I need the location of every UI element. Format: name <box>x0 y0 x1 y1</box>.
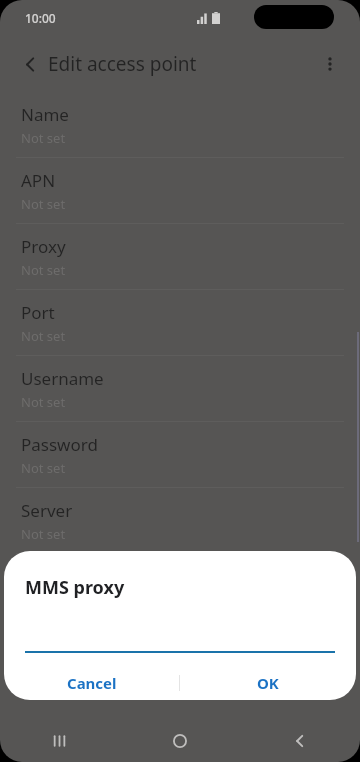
staticText: MMS proxy <box>25 575 125 600</box>
staticText: APN <box>21 169 56 192</box>
staticText: Not set <box>21 459 66 477</box>
staticText: MMS port <box>21 631 100 654</box>
button[interactable]: Cancel <box>4 665 179 700</box>
button[interactable]: Server <box>0 488 360 553</box>
staticText: OK <box>257 673 279 693</box>
button[interactable]: Navigate up <box>10 44 50 84</box>
staticText: Not set <box>21 129 66 147</box>
staticText: Port <box>21 301 55 324</box>
button[interactable]: MMS port <box>0 620 360 685</box>
button[interactable]: Port <box>0 290 360 355</box>
staticText: Not set <box>21 525 66 543</box>
button[interactable]: Home <box>120 720 240 762</box>
button[interactable]: OK <box>180 665 356 700</box>
button[interactable] <box>25 625 335 653</box>
button[interactable]: Proxy <box>0 224 360 289</box>
staticText: Cancel <box>67 673 117 693</box>
staticText: Not set <box>21 591 66 609</box>
staticText: Edit access point <box>48 51 197 77</box>
button[interactable]: Back <box>240 720 360 762</box>
button[interactable]: More options <box>308 42 352 86</box>
staticText: Not set <box>21 327 66 345</box>
button[interactable]: Username <box>0 356 360 421</box>
button[interactable]: Recent apps <box>0 720 120 762</box>
button[interactable]: Password <box>0 422 360 487</box>
button[interactable]: MMS proxy <box>0 554 360 619</box>
staticText: MMS proxy <box>21 565 111 588</box>
staticText: Not set <box>21 261 66 279</box>
staticText: Server <box>21 499 73 522</box>
staticText: Not set <box>21 195 66 213</box>
staticText: Not set <box>21 393 66 411</box>
button[interactable]: Name <box>0 92 360 157</box>
staticText: Username <box>21 367 104 390</box>
staticText: 10:00 <box>25 10 56 26</box>
staticText: Password <box>21 433 98 456</box>
button[interactable]: APN <box>0 158 360 223</box>
staticText: Name <box>21 103 69 126</box>
staticText: Proxy <box>21 235 66 258</box>
